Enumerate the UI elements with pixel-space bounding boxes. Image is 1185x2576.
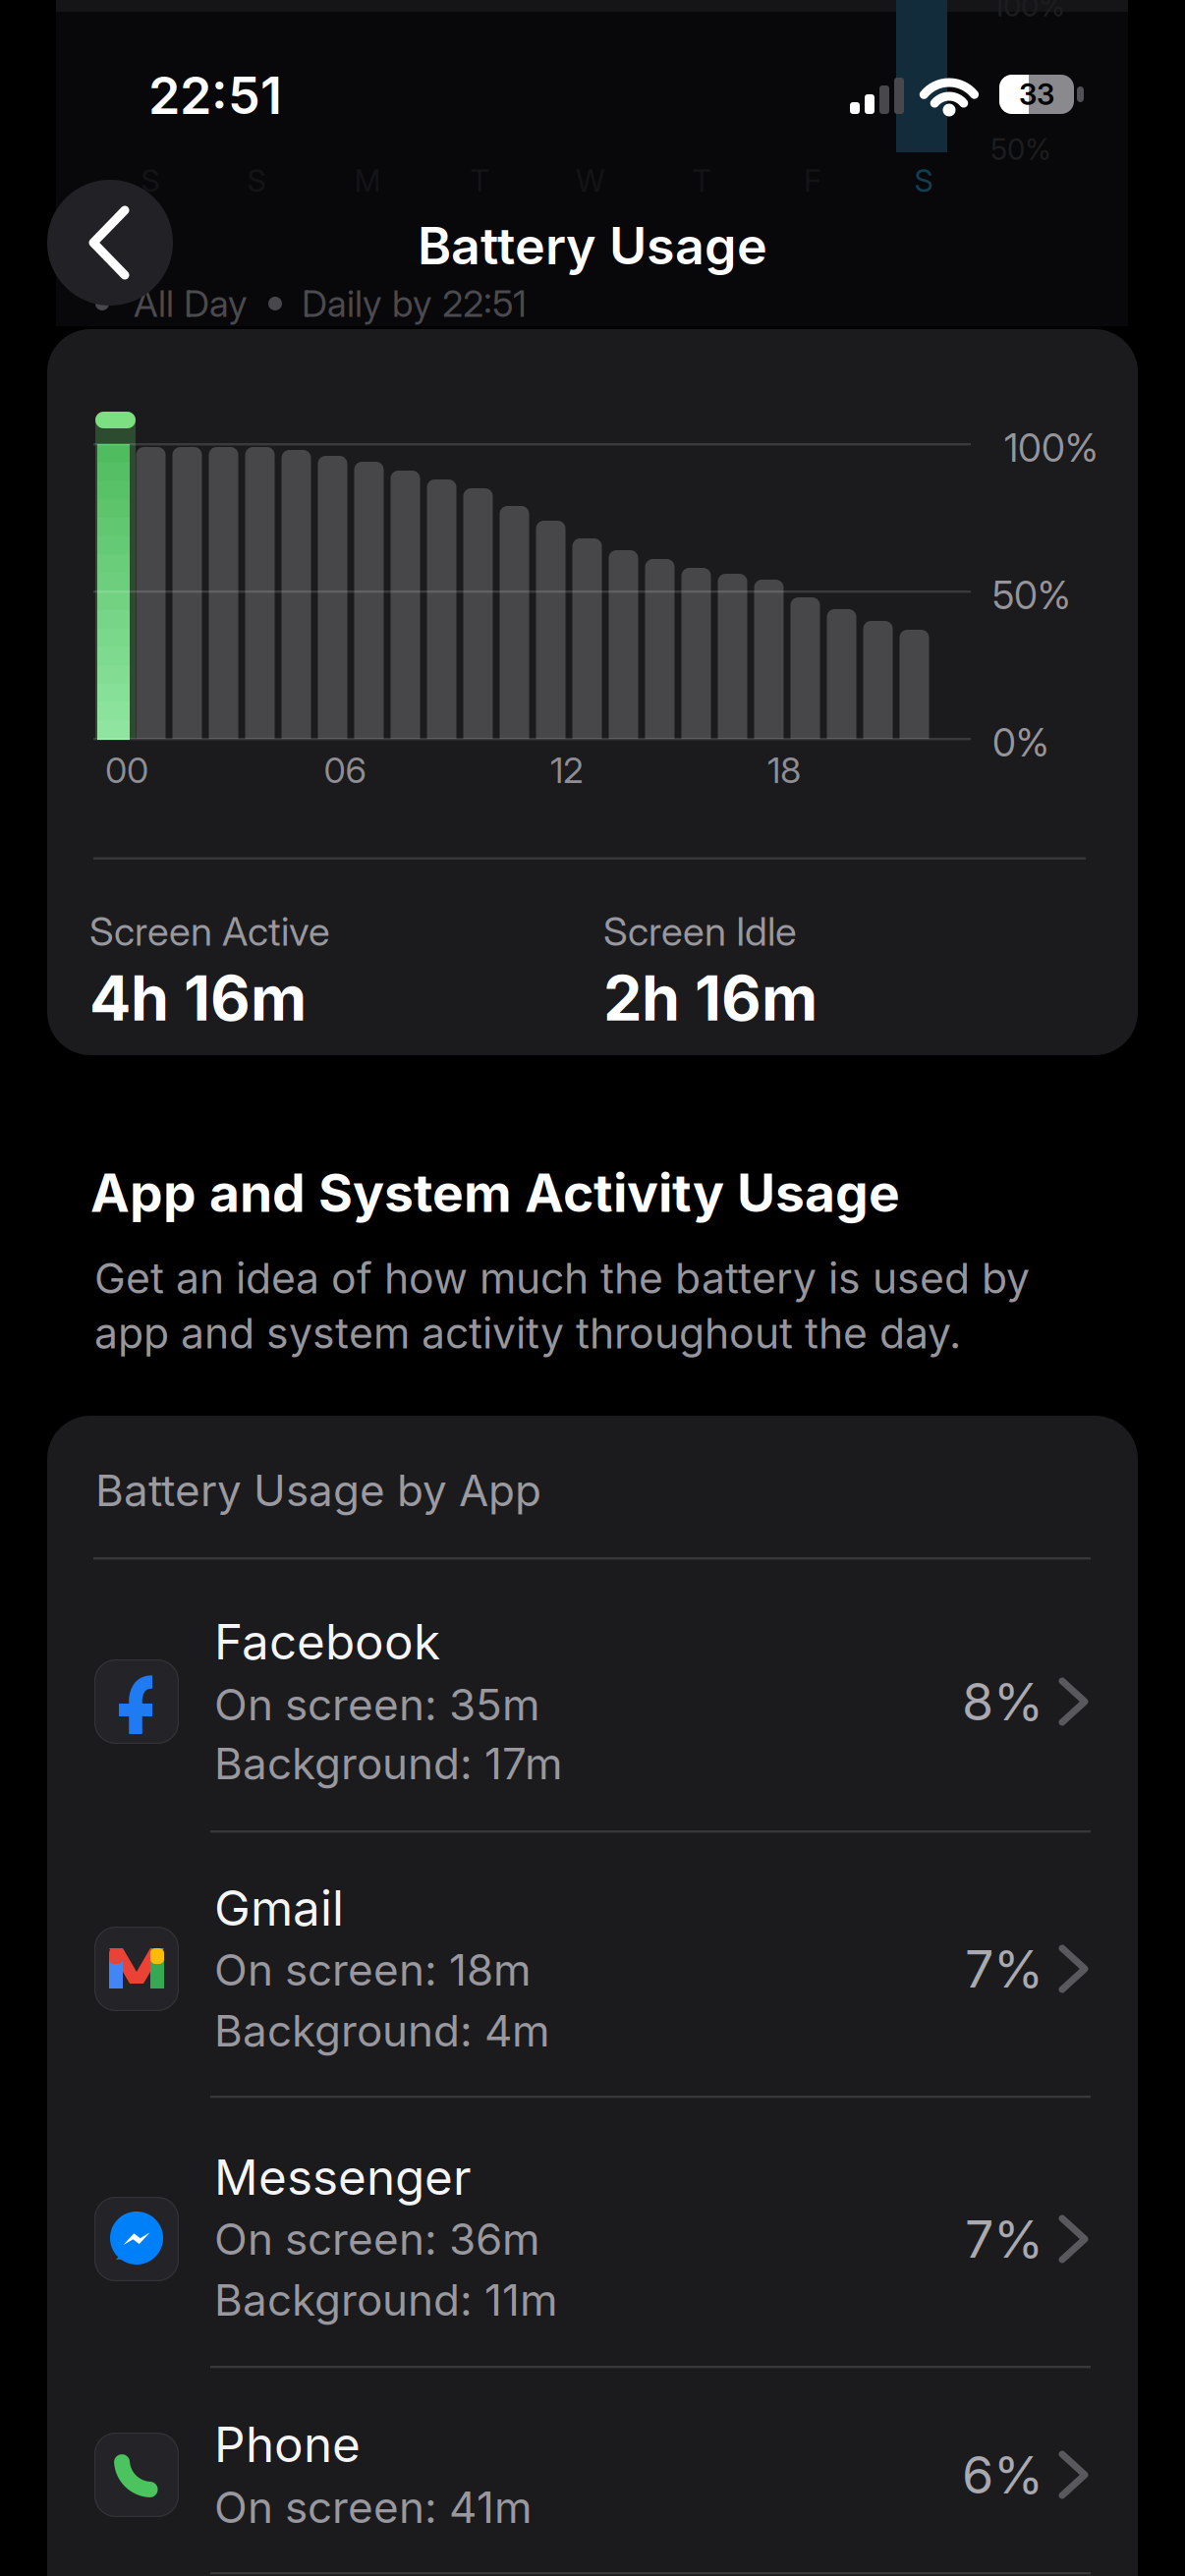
staticText: S	[914, 163, 933, 199]
staticText: W	[576, 163, 605, 199]
staticText: 18	[767, 749, 801, 791]
staticText: 7%	[965, 1939, 1044, 1999]
staticText: Messenger	[214, 2149, 472, 2206]
staticText: F	[804, 163, 821, 199]
staticText: 4h 16m	[89, 962, 307, 1034]
staticText: 12	[550, 749, 584, 791]
staticText: 0%	[992, 720, 1049, 765]
staticText: Get an idea of how much the battery is u…	[94, 1253, 1030, 1303]
button[interactable]: Back	[47, 180, 173, 306]
staticText: 50%	[990, 132, 1051, 166]
staticText: Facebook	[214, 1613, 440, 1670]
staticText: T	[692, 163, 711, 199]
staticText: 00	[105, 749, 148, 791]
staticText: T	[470, 163, 489, 199]
staticText: Background: 17m	[214, 1738, 563, 1789]
staticText: Background: 4m	[214, 2005, 550, 2056]
button[interactable]: Phone	[47, 2368, 1138, 2576]
staticText: 33	[1019, 77, 1054, 111]
staticText: On screen: 35m	[214, 1679, 540, 1730]
staticText: Screen Idle	[603, 908, 797, 955]
staticText: 06	[324, 749, 366, 791]
staticText: M	[354, 163, 381, 199]
staticText: 22:51	[148, 65, 282, 125]
staticText: Battery Usage	[418, 215, 767, 276]
staticText: 8%	[962, 1671, 1044, 1732]
staticText: Phone	[214, 2416, 361, 2473]
staticText: Screen Active	[89, 908, 330, 955]
staticText: Gmail	[214, 1879, 344, 1937]
button[interactable]: Gmail	[47, 1832, 1138, 2096]
staticText: On screen: 41m	[214, 2482, 533, 2533]
staticText: All Day	[134, 282, 248, 325]
staticText: S	[141, 163, 160, 199]
button[interactable]: Messenger	[47, 2098, 1138, 2366]
button[interactable]: Facebook	[47, 1560, 1138, 1830]
staticText: App and System Activity Usage	[90, 1162, 900, 1224]
staticText: app and system activity throughout the d…	[94, 1308, 961, 1358]
staticText: Daily by 22:51	[302, 282, 527, 325]
staticText: 50%	[992, 573, 1071, 618]
staticText: Battery Usage by App	[95, 1465, 541, 1516]
staticText: 6%	[962, 2445, 1044, 2505]
staticText: 7%	[965, 2209, 1044, 2269]
staticText: On screen: 36m	[214, 2213, 540, 2264]
staticText: On screen: 18m	[214, 1944, 532, 1995]
staticText: S	[247, 163, 266, 199]
staticText: 2h 16m	[603, 962, 818, 1034]
staticText: 100%	[1004, 426, 1099, 470]
staticText: Background: 11m	[214, 2274, 558, 2325]
staticText: 100%	[992, 0, 1065, 23]
